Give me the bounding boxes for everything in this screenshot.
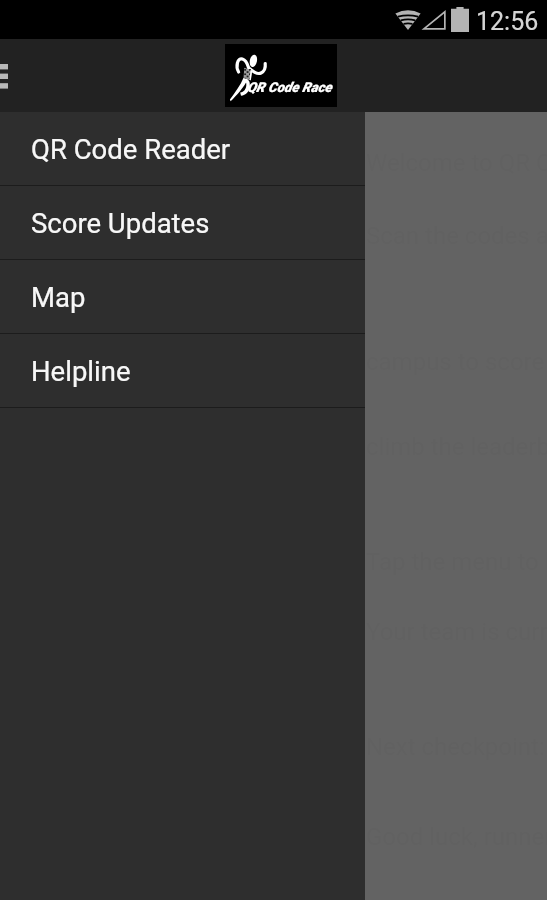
staticText: Map (31, 281, 86, 313)
staticText: Helpline (31, 355, 131, 387)
staticText: 12:56 (476, 7, 539, 36)
staticText: QR Code Race (247, 79, 332, 95)
staticText: QR Code Reader (31, 133, 231, 165)
button[interactable]: QR Code Reader (0, 112, 365, 185)
button[interactable]: Map (0, 260, 365, 333)
button[interactable]: QR Code Race (225, 44, 337, 107)
staticText: Score Updates (31, 207, 210, 239)
button[interactable]: Score Updates (0, 186, 365, 259)
button[interactable]: Open navigation drawer (0, 52, 20, 100)
button[interactable]: Helpline (0, 334, 365, 407)
